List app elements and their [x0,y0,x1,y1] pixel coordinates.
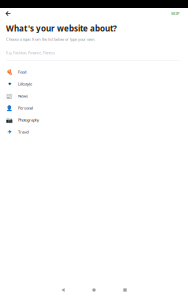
button[interactable]: 📷 [0,114,188,126]
staticText: 📰 [6,93,13,99]
staticText: Personal [18,105,33,111]
button[interactable]: 👤 [0,102,188,114]
button[interactable]: SKIP [171,8,188,19]
staticText: ✦ [7,81,11,87]
staticText: E.g. Fashion, Finance, Fitness [6,50,55,55]
button[interactable]: Back [47,284,78,296]
button[interactable]: Back [0,8,17,19]
button[interactable]: Home [78,284,109,296]
staticText: SKIP [171,11,179,16]
staticText: Travel [18,129,29,135]
button[interactable]: 🍕 [0,66,188,78]
staticText: Photography [18,117,39,123]
staticText: Food [18,69,26,75]
staticText: Choose a topic from the list below or ty… [6,37,95,42]
staticText: 📷 [6,117,13,123]
staticText: What's your website about? [6,23,117,34]
staticText: Lifestyle [18,81,32,87]
staticText: ✈ [7,129,11,135]
button[interactable]: ✦ [0,78,188,90]
button[interactable]: Recent apps [109,284,140,296]
staticText: 👤 [6,105,13,111]
button[interactable]: ✈ [0,126,188,138]
button[interactable]: 📰 [0,90,188,102]
staticText: 🍕 [6,69,13,75]
staticText: News [18,93,28,99]
